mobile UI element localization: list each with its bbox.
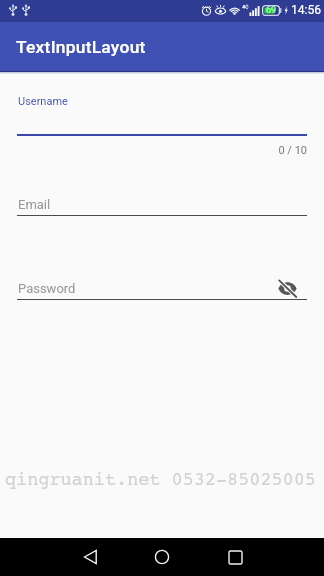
button[interactable]: Password <box>17 269 307 305</box>
staticText: Password <box>18 281 76 296</box>
button[interactable]: Home <box>134 538 190 576</box>
button[interactable]: Email <box>17 185 307 221</box>
button[interactable]: Toggle password visibility <box>276 277 298 299</box>
button[interactable]: Back <box>62 538 118 576</box>
staticText: qingruanit.net 0532-85025005 <box>5 469 324 491</box>
staticText: 0 / 10 <box>207 144 307 157</box>
staticText: 14:56 <box>291 3 322 17</box>
staticText: 69 <box>266 5 277 16</box>
button[interactable]: Username <box>17 90 324 138</box>
button[interactable]: Recents <box>207 538 263 576</box>
staticText: Username <box>18 95 68 108</box>
staticText: Email <box>18 197 51 212</box>
staticText: TextInputLayout <box>16 37 146 57</box>
